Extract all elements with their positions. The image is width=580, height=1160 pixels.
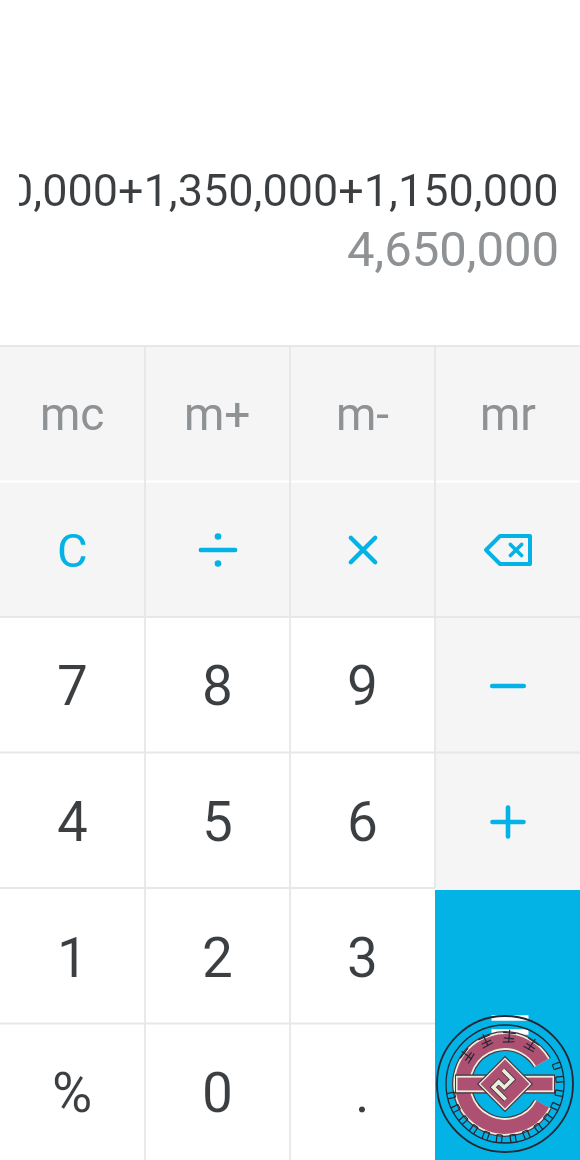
staticText: m- (336, 387, 390, 441)
button[interactable]: . (290, 1026, 435, 1160)
staticText: 1 (57, 926, 88, 990)
button[interactable]: % (0, 1026, 145, 1160)
staticText: m+ (184, 387, 251, 441)
button[interactable]: Multiply (290, 482, 435, 618)
staticText: 2 (202, 926, 233, 990)
staticText: mc (40, 387, 105, 441)
button[interactable]: 6 (290, 754, 435, 890)
staticText: . (355, 1061, 370, 1125)
staticText: 7 (57, 654, 88, 718)
button[interactable]: 7 (0, 618, 145, 754)
button[interactable]: Backspace (435, 482, 580, 618)
button[interactable]: 4 (0, 754, 145, 890)
staticText: 3 (347, 926, 378, 990)
button[interactable]: m- (290, 346, 435, 482)
staticText: mr (480, 387, 536, 441)
button[interactable]: m+ (145, 346, 290, 482)
button[interactable]: mc (0, 346, 145, 482)
button[interactable]: 2 (145, 890, 290, 1026)
button[interactable]: Equals (435, 890, 580, 1160)
staticText: 4 (57, 790, 88, 854)
button[interactable]: 3 (290, 890, 435, 1026)
button[interactable]: C (0, 482, 145, 618)
staticText: 6 (347, 790, 378, 854)
button[interactable]: Divide (145, 482, 290, 618)
button[interactable]: 5 (145, 754, 290, 890)
staticText: 9 (347, 654, 378, 718)
staticText: 0 (202, 1061, 233, 1125)
button[interactable]: 0 (145, 1026, 290, 1160)
button[interactable]: mr (435, 346, 580, 482)
button[interactable]: Plus (435, 754, 580, 890)
staticText: % (52, 1061, 93, 1125)
staticText: 5 (202, 790, 233, 854)
button[interactable]: Minus (435, 618, 580, 754)
staticText: C (57, 523, 88, 578)
button[interactable]: 9 (290, 618, 435, 754)
staticText: 0,000+1,350,000+1,150,000 (19, 164, 559, 217)
staticText: 8 (202, 654, 233, 718)
button[interactable]: 8 (145, 618, 290, 754)
button[interactable]: 1 (0, 890, 145, 1026)
staticText: 4,650,000 (0, 221, 559, 278)
